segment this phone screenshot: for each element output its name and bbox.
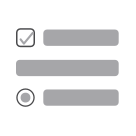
button[interactable]: Option <box>0 0 136 136</box>
button[interactable]: Checkbox option, selected <box>0 0 136 136</box>
button[interactable]: Radio option, selected <box>0 0 136 136</box>
